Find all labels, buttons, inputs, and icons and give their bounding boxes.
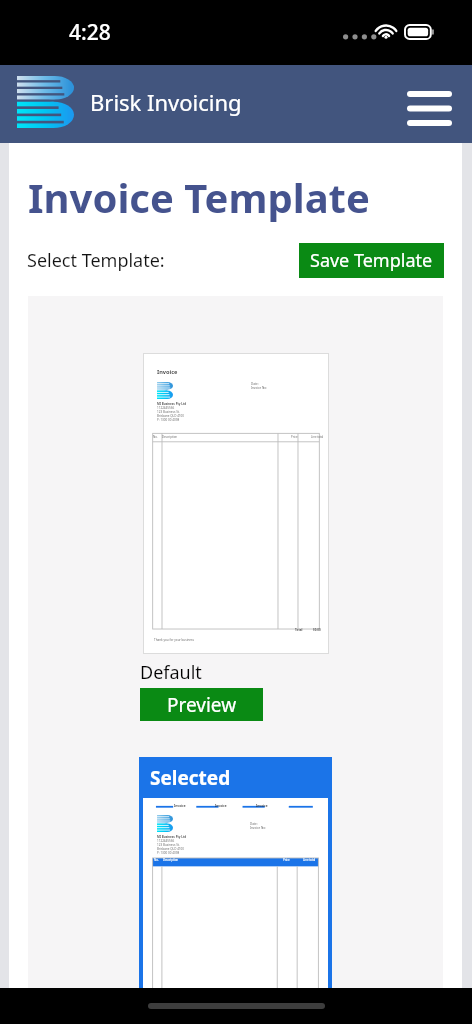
staticText: Invoice xyxy=(157,368,178,376)
button[interactable]: Save Template xyxy=(299,243,444,278)
staticText: Date: xyxy=(251,382,259,386)
staticText: P: 1300 00 4098 xyxy=(157,418,180,422)
button[interactable]: Preview xyxy=(140,688,263,721)
staticText: Default xyxy=(140,660,202,685)
staticText: Brisk Invoicing xyxy=(90,87,242,117)
staticText: Price xyxy=(283,858,290,862)
staticText: MI Business Pty Ltd xyxy=(157,835,187,839)
staticText: 123 Business St. xyxy=(157,410,180,414)
staticText: Description xyxy=(162,435,178,439)
staticText: 1122445566 xyxy=(157,406,175,410)
staticText: Total xyxy=(295,628,303,632)
staticText: Invoice No: xyxy=(250,826,266,830)
staticText: 4:28 xyxy=(69,18,111,47)
staticText: $0.00 xyxy=(313,628,321,632)
staticText: Description xyxy=(163,858,179,862)
staticText: 1122445566 xyxy=(157,839,175,843)
staticText: Invoice Template xyxy=(28,170,370,224)
staticText: No. xyxy=(153,435,158,439)
staticText: Date: xyxy=(250,822,258,826)
staticText: No. xyxy=(154,858,159,862)
staticText: Invoice xyxy=(215,804,227,808)
staticText: Brisbane QLD 4100 xyxy=(157,847,185,851)
staticText: Invoice xyxy=(256,804,268,808)
staticText: Line total xyxy=(311,435,324,439)
staticText: Price xyxy=(291,435,298,439)
staticText: 123 Business St. xyxy=(157,843,180,847)
staticText: P: 1300 00 4098 xyxy=(157,851,180,855)
staticText: Invoice xyxy=(174,804,186,808)
staticText: Brisbane QLD 4100 xyxy=(157,414,185,418)
staticText: Selected xyxy=(150,765,231,791)
staticText: Preview xyxy=(167,692,237,718)
staticText: Save Template xyxy=(310,248,433,273)
staticText: Invoice No: xyxy=(251,386,267,390)
button[interactable]: Open navigation menu xyxy=(400,79,458,137)
staticText: Select Template: xyxy=(27,248,165,273)
staticText: Line total xyxy=(303,858,316,862)
staticText: MI Business Pty Ltd xyxy=(157,402,187,406)
staticText: Thank you for your business xyxy=(154,638,194,642)
